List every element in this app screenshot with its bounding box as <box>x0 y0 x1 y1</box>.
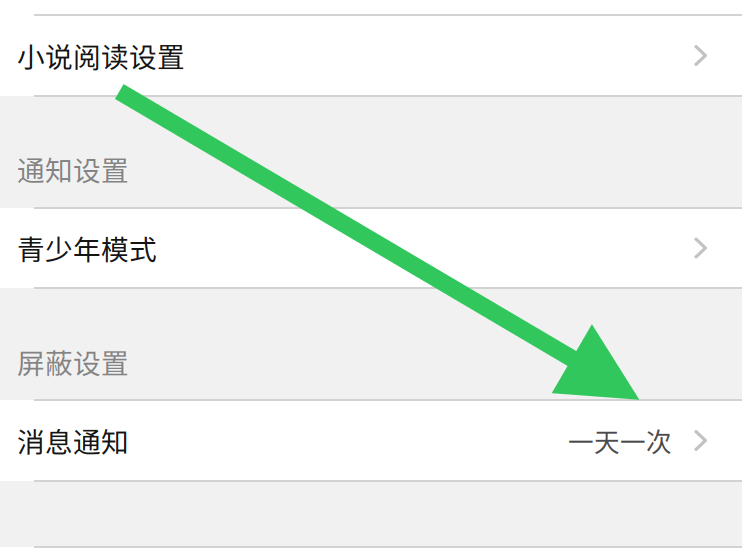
staticText: 一天一次 <box>568 422 672 459</box>
staticText: 青少年模式 <box>17 228 157 268</box>
staticText: 屏蔽设置 <box>17 342 129 382</box>
button[interactable]: 小说阅读设置 <box>0 15 742 96</box>
staticText: 消息通知 <box>17 420 129 461</box>
button[interactable]: 消息通知 <box>0 400 742 481</box>
staticText: 通知设置 <box>17 149 129 189</box>
button[interactable]: 青少年模式 <box>0 208 742 288</box>
staticText: 小说阅读设置 <box>17 35 185 76</box>
